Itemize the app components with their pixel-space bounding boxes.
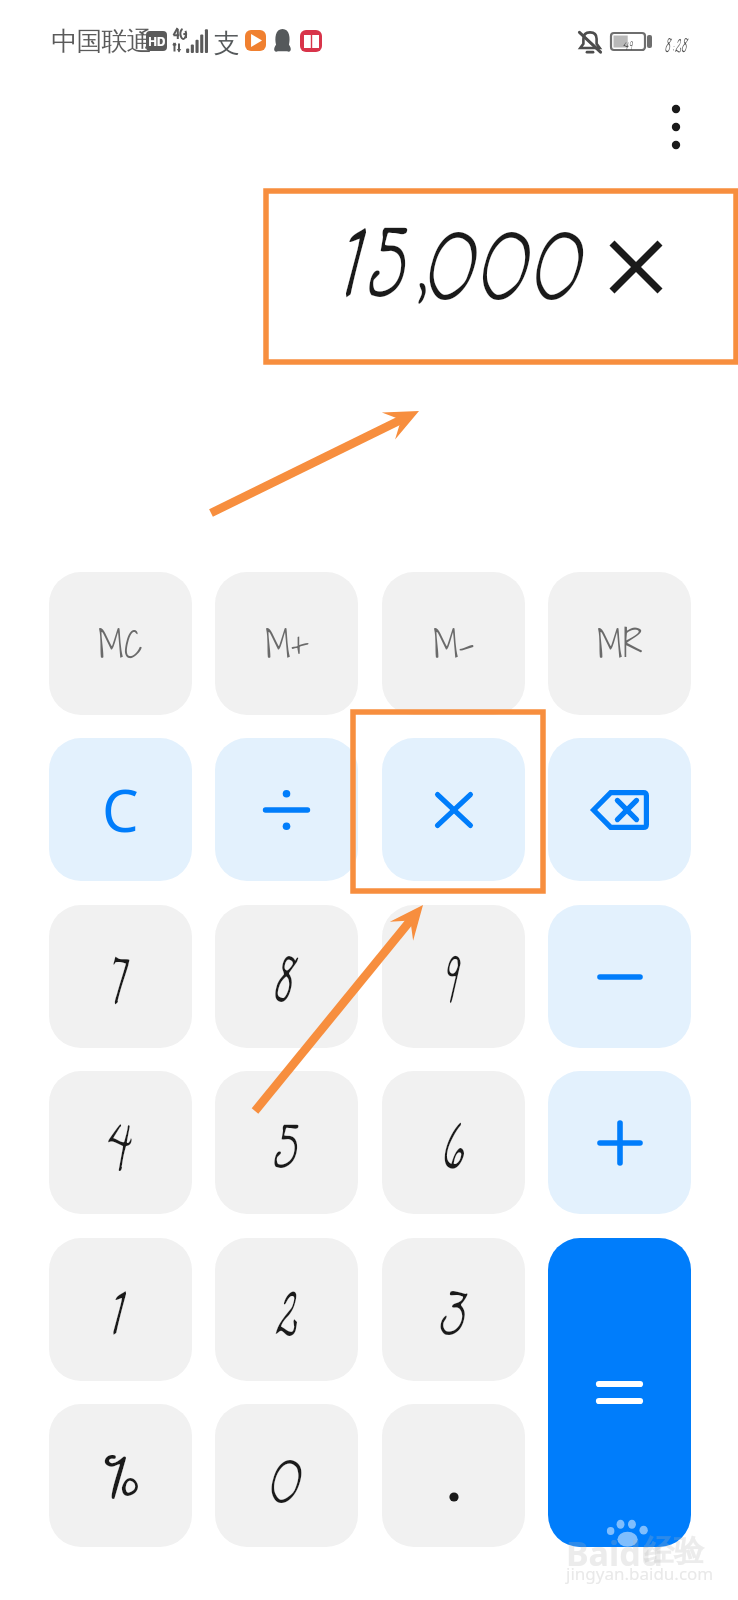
staticText: 5 [274,1082,300,1203]
button[interactable]: MC [49,572,192,715]
button[interactable]: M+ [215,572,358,715]
button[interactable]: Plus [548,1071,691,1214]
button[interactable]: 4 [49,1071,192,1214]
staticText: Baidu [566,1530,663,1576]
staticText: MR [597,613,643,674]
button[interactable]: 1 [49,1238,192,1381]
button[interactable]: Divide [215,738,358,881]
button[interactable]: Equals [548,1238,691,1547]
staticText: 49 [623,31,634,50]
staticText: 2 [275,1249,298,1370]
button[interactable]: 3 [382,1238,525,1381]
staticText: 0 [270,1415,304,1536]
staticText: MC [98,613,143,674]
button[interactable]: 0 [215,1404,358,1547]
button[interactable]: 2 [215,1238,358,1381]
staticText: 1 [113,1249,128,1370]
button[interactable]: 6 [382,1071,525,1214]
staticText: C [102,770,139,849]
staticText: jingyan.baidu.com [566,1562,714,1585]
staticText: 中国联通 [52,25,152,58]
button[interactable]: 9 [382,905,525,1048]
staticText: 经验 [644,1532,704,1570]
staticText: 6 [443,1082,465,1203]
staticText: 支 [214,27,240,60]
staticText: 9 [445,916,463,1037]
button[interactable]: Multiply [382,738,525,881]
button[interactable]: 5 [215,1071,358,1214]
staticText: 8:28 [665,27,689,62]
button[interactable]: . [382,1404,525,1547]
button[interactable]: Backspace [548,738,691,881]
staticText: 7 [111,916,131,1037]
button[interactable]: Minus [548,905,691,1048]
staticText: M+ [265,613,309,674]
button[interactable]: 7 [49,905,192,1048]
button[interactable]: M- [382,572,525,715]
button[interactable]: More options [653,93,699,139]
staticText: M- [433,613,475,674]
staticText: 15,000 [345,161,587,316]
staticText: HD [148,33,166,49]
button[interactable]: 8 [215,905,358,1048]
button[interactable]: % [49,1404,192,1547]
button[interactable]: MR [548,572,691,715]
button[interactable]: C [49,738,192,881]
staticText: 3 [439,1249,469,1370]
staticText: 8 [274,916,299,1037]
staticText: % [103,1404,138,1530]
staticText: 4 [107,1082,134,1203]
